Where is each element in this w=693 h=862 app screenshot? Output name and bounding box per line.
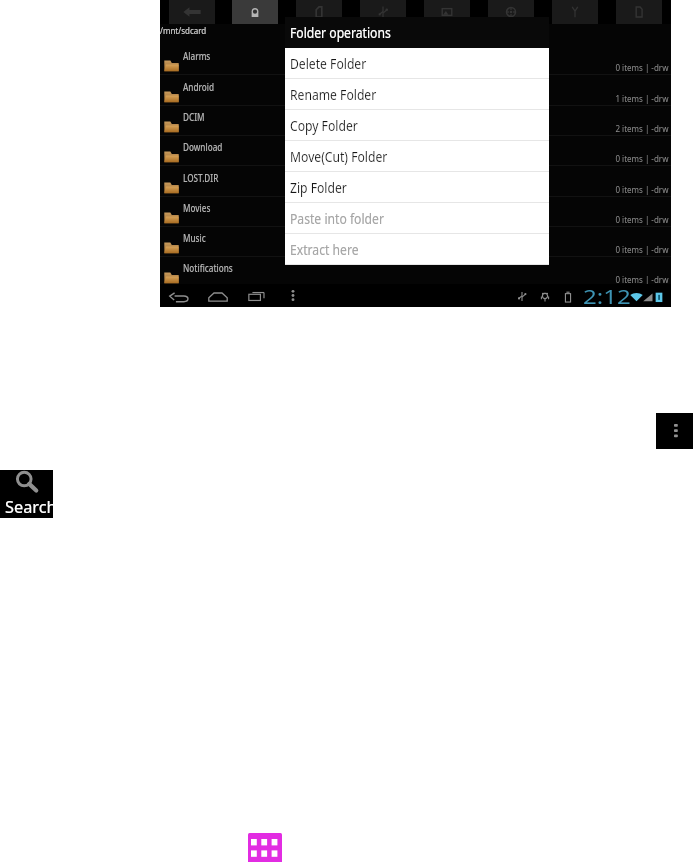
button[interactable]: Recent apps	[248, 291, 265, 302]
staticText: Move(Cut) Folder	[290, 146, 388, 167]
staticText: Folder operations	[290, 22, 391, 43]
button[interactable]: Search	[0, 470, 53, 518]
button[interactable]: Android	[160, 76, 671, 106]
button[interactable]: Movies	[160, 197, 671, 227]
staticText: 2:12	[583, 283, 631, 306]
staticText: 2 items | -drw	[615, 122, 669, 135]
button[interactable]: Rename Folder	[285, 79, 549, 110]
button[interactable]: Images	[415, 0, 479, 24]
button[interactable]: SD card	[287, 0, 351, 24]
button[interactable]: Paste into folder	[285, 203, 549, 234]
button[interactable]: Notifications	[160, 257, 671, 287]
button[interactable]: Zip Folder	[285, 172, 549, 203]
staticText: 0 items | -drw	[615, 183, 669, 196]
button[interactable]: Tools	[543, 0, 607, 24]
button[interactable]: Back	[160, 0, 223, 24]
button[interactable]: More options	[656, 413, 693, 449]
button[interactable]: Copy Folder	[285, 110, 549, 141]
staticText: 0 items | -drw	[615, 273, 669, 286]
button[interactable]: LOST.DIR	[160, 167, 671, 197]
staticText: Music	[183, 231, 206, 245]
staticText: Extract here	[290, 239, 359, 260]
button[interactable]: Files	[607, 0, 671, 24]
button[interactable]: Pictures	[160, 288, 671, 307]
staticText: 0 items | -drw	[615, 61, 669, 74]
button[interactable]: Delete Folder	[285, 48, 549, 79]
button[interactable]: Music	[160, 227, 671, 257]
staticText: 1 items | -drw	[615, 92, 669, 105]
staticText: Notifications	[183, 261, 233, 275]
staticText: Rename Folder	[290, 84, 376, 105]
staticText: 0 items | -drw	[615, 152, 669, 165]
staticText: 0 items | -drw	[615, 213, 669, 226]
staticText: LOST.DIR	[183, 171, 219, 185]
staticText: /mnt/sdcard	[160, 24, 206, 37]
staticText: Pictures	[183, 292, 215, 306]
button[interactable]: USB	[351, 0, 415, 24]
staticText: Paste into folder	[290, 208, 384, 229]
staticText: Zip Folder	[290, 177, 348, 198]
button[interactable]: Alarms	[160, 45, 671, 75]
staticText: 0 items | -drw	[615, 243, 669, 256]
button[interactable]: Home	[223, 0, 287, 24]
button[interactable]: DCIM	[160, 106, 671, 136]
button[interactable]: Menu	[290, 290, 296, 301]
button[interactable]: Apps	[248, 833, 282, 862]
staticText: Alarms	[183, 49, 211, 63]
button[interactable]: Extract here	[285, 234, 549, 265]
staticText: DCIM	[183, 110, 205, 124]
staticText: Movies	[183, 201, 211, 215]
button[interactable]: Media	[479, 0, 543, 24]
staticText: Download	[183, 140, 223, 154]
staticText: Copy Folder	[290, 115, 358, 136]
button[interactable]: Download	[160, 136, 671, 166]
button[interactable]: Home	[208, 292, 228, 302]
staticText: Search	[5, 495, 56, 518]
staticText: Android	[183, 80, 214, 94]
staticText: Delete Folder	[290, 53, 367, 74]
button[interactable]: Back	[168, 292, 190, 303]
button[interactable]: Move(Cut) Folder	[285, 141, 549, 172]
